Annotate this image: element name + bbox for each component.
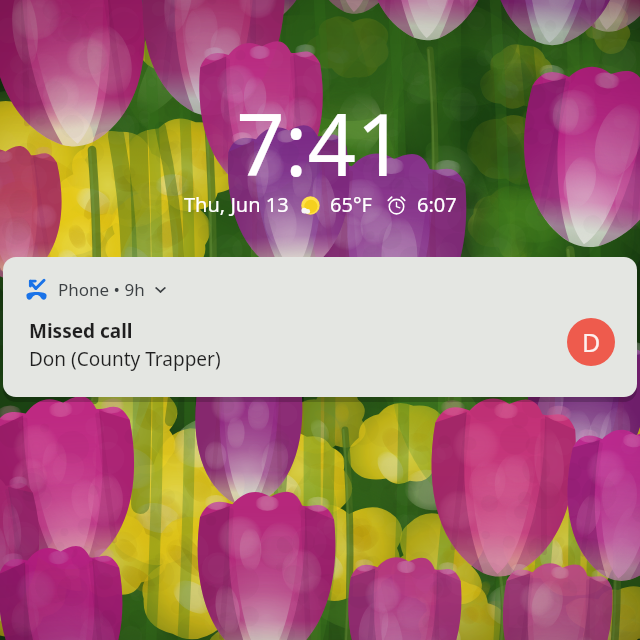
staticText: Missed call — [29, 318, 133, 344]
button[interactable]: Phone • 9h — [3, 257, 637, 397]
staticText: 65°F — [330, 191, 372, 218]
staticText: Don (County Trapper) — [29, 346, 221, 372]
button[interactable]: Contact Don — [567, 318, 615, 366]
button[interactable]: Phone • 9h — [26, 278, 169, 301]
staticText: Thu, Jun 13 — [184, 191, 289, 218]
staticText: Phone • 9h — [58, 278, 145, 301]
staticText: 6:07 — [417, 191, 457, 218]
staticText: 7:41 — [236, 85, 405, 201]
staticText: D — [582, 325, 601, 359]
